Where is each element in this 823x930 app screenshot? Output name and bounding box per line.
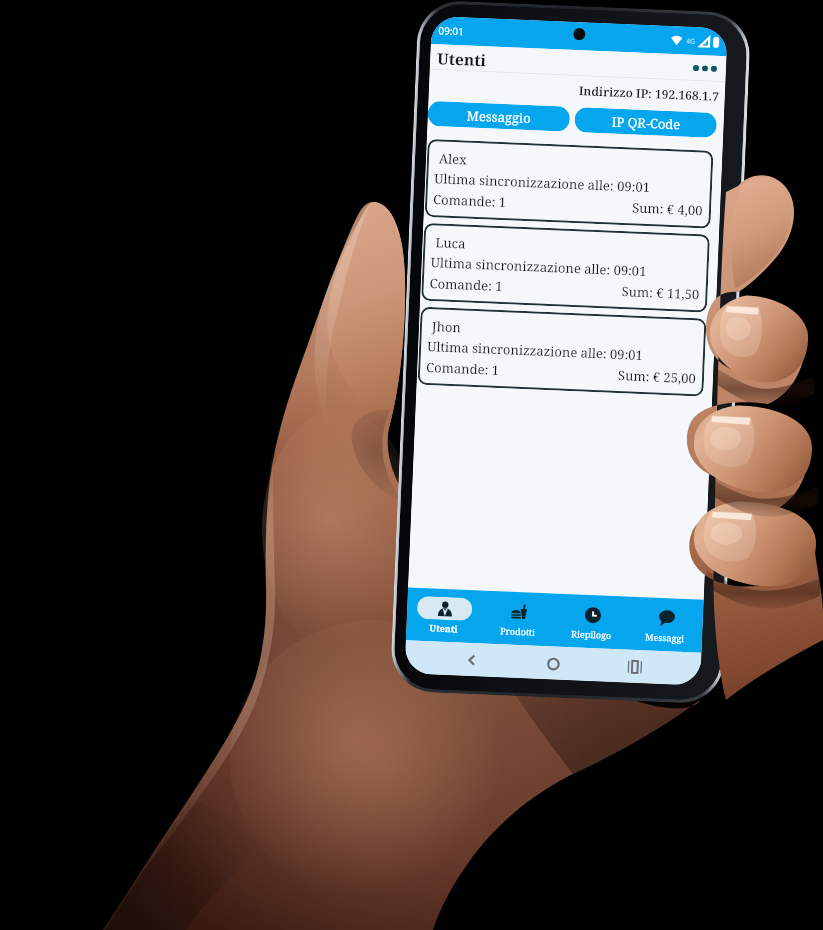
button[interactable]: Messaggi [628,597,704,653]
button[interactable]: More options [690,62,720,75]
staticText: Indirizzo IP: 192.168.1.7 [429,76,719,104]
staticText: Alex [439,149,467,168]
staticText: Ultima sincronizzazione alle: 09:01 [434,169,650,196]
staticText: Luca [435,233,467,253]
button[interactable]: Jhon [417,307,706,397]
button[interactable]: IP QR-Code [574,107,717,138]
button[interactable]: Luca [421,223,710,313]
staticText: 4G [686,37,696,47]
button[interactable]: Home [537,648,568,679]
staticText: Ultima sincronizzazione alle: 09:01 [427,337,643,364]
staticText: IP QR-Code [611,112,681,133]
button[interactable]: Messaggio [427,101,570,132]
staticText: Comande: 1 [426,358,500,379]
staticText: Comande: 1 [433,190,507,211]
staticText: Messaggio [466,106,531,127]
staticText: 09:01 [438,23,465,38]
staticText: Utenti [429,621,459,634]
button[interactable]: Utenti [406,587,482,643]
staticText: Messaggi [645,630,685,644]
staticText: Riepilogo [571,627,612,641]
staticText: Ultima sincronizzazione alle: 09:01 [430,253,647,280]
button[interactable]: Prodotti [480,590,556,647]
staticText: Jhon [432,317,461,336]
staticText: Comande: 1 [429,274,503,295]
staticText: Sum: € 4,00 [632,198,703,219]
staticText: Sum: € 25,00 [618,366,696,387]
button[interactable]: Riepilogo [554,594,630,650]
button[interactable]: Alex [424,139,713,229]
button[interactable]: Recents [619,651,650,683]
staticText: Utenti [437,47,487,70]
staticText: Sum: € 11,50 [621,282,700,303]
staticText: Prodotti [500,624,535,638]
button[interactable]: Back [456,644,488,676]
